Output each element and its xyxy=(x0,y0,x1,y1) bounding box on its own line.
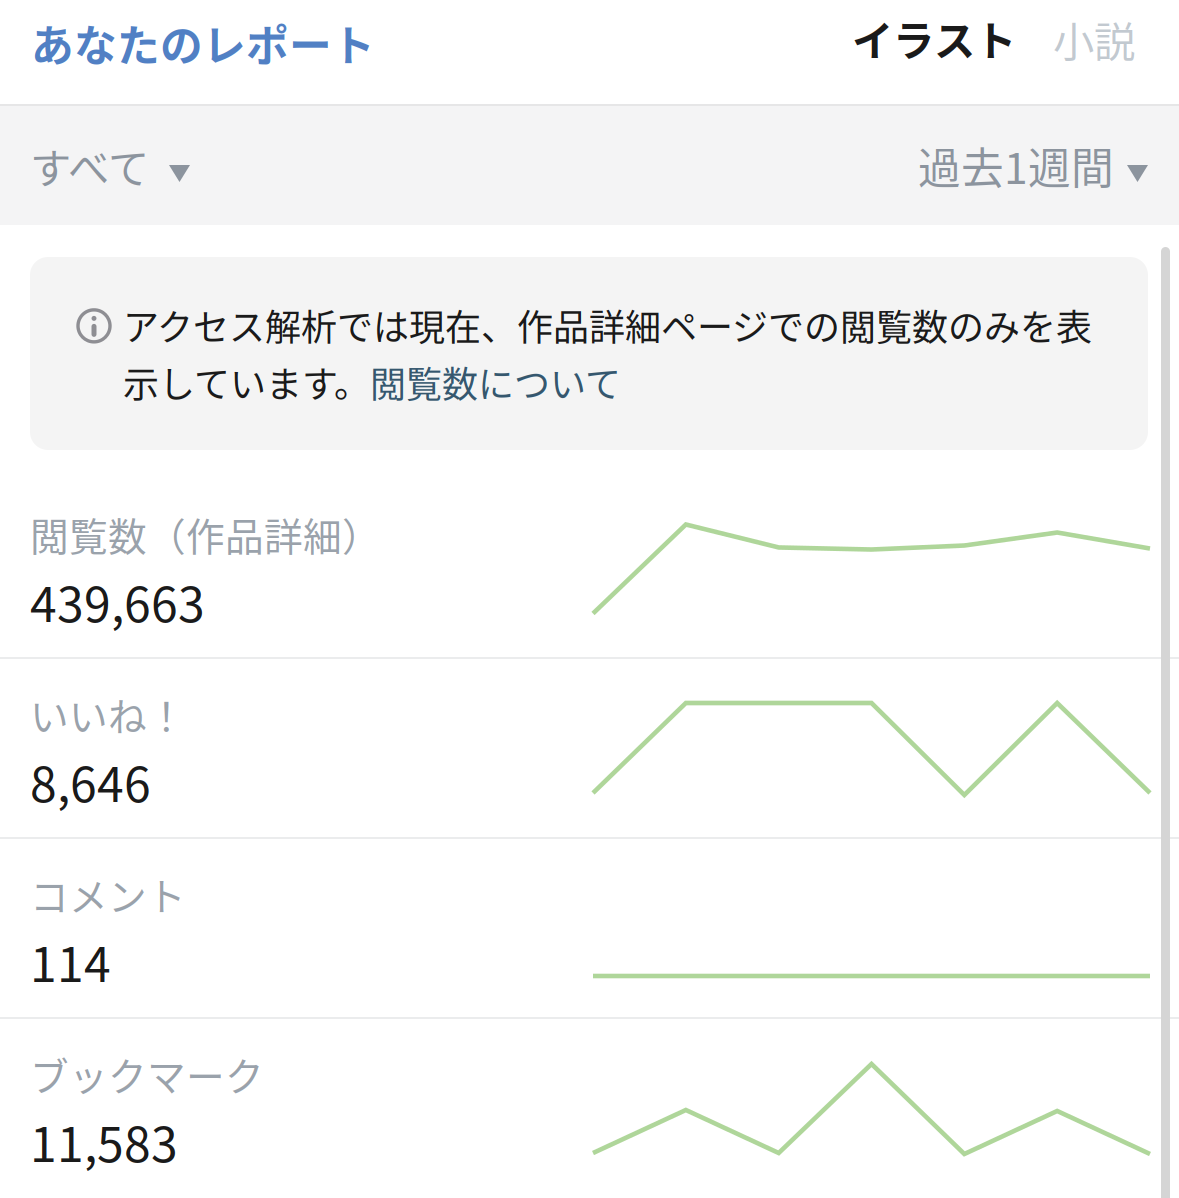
button[interactable]: いいね！ xyxy=(0,659,1179,837)
staticText: 11,583 xyxy=(30,1106,178,1176)
button[interactable]: 閲覧数（作品詳細） xyxy=(0,479,1179,657)
staticText: 114 xyxy=(30,926,111,996)
staticText: アクセス解析では現在、作品詳細ページでの閲覧数のみを表 xyxy=(123,299,1092,351)
button[interactable]: 閲覧数について xyxy=(370,356,621,408)
staticText: 小説 xyxy=(1053,9,1135,69)
staticText: ブックマーク xyxy=(30,1046,264,1102)
staticText: いいね！ xyxy=(30,686,186,742)
staticText: 過去1週間 xyxy=(918,135,1114,196)
button[interactable]: イラスト xyxy=(842,0,1025,105)
staticText: 8,646 xyxy=(30,746,151,816)
button[interactable]: 小説 xyxy=(1025,0,1179,105)
staticText: すべて xyxy=(30,136,149,195)
button[interactable]: すべて xyxy=(0,106,206,225)
staticText: 閲覧数（作品詳細） xyxy=(30,506,381,562)
staticText: コメント xyxy=(30,866,186,922)
button[interactable]: ブックマーク xyxy=(0,1019,1179,1197)
staticText: 439,663 xyxy=(30,566,205,636)
button[interactable]: あなたのレポート xyxy=(0,0,375,106)
staticText: イラスト xyxy=(852,8,1016,68)
staticText: あなたのレポート xyxy=(31,12,375,74)
staticText: 閲覧数について xyxy=(370,356,621,408)
button[interactable]: コメント xyxy=(0,839,1179,1017)
staticText: 示しています。 xyxy=(123,356,370,408)
button[interactable]: 過去1週間 xyxy=(902,105,1179,226)
